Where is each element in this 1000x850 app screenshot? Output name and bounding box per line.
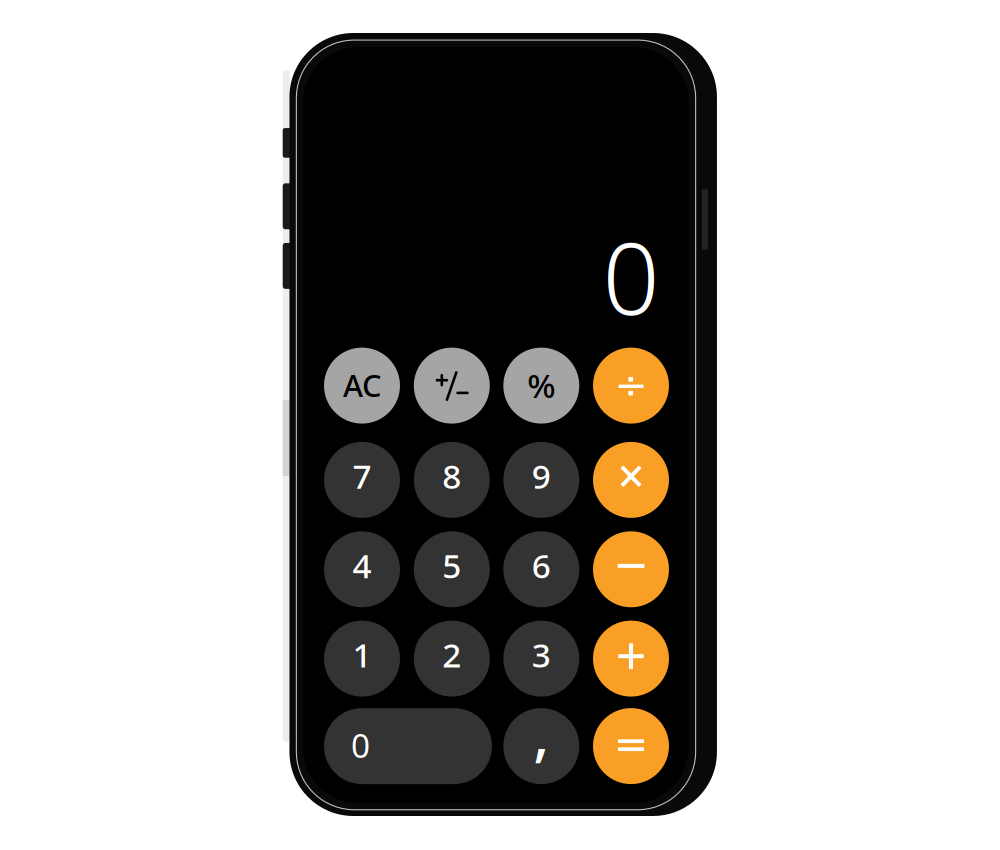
button[interactable]: ,	[503, 708, 579, 784]
button[interactable]: Add	[593, 621, 669, 697]
staticText: 0	[351, 723, 370, 767]
button[interactable]: 3	[503, 621, 579, 697]
button[interactable]: %	[503, 348, 579, 424]
button[interactable]: 8	[414, 442, 490, 518]
button[interactable]: Subtract	[593, 531, 669, 607]
button[interactable]: Plus minus	[414, 348, 490, 424]
staticText: 9	[532, 454, 551, 498]
button[interactable]: 7	[324, 442, 400, 518]
staticText: 2	[442, 632, 461, 677]
button[interactable]: Divide	[593, 348, 669, 424]
button[interactable]: 9	[503, 442, 579, 518]
button[interactable]: 6	[503, 531, 579, 607]
staticText: 4	[352, 543, 371, 587]
staticText: 0	[602, 210, 659, 342]
button[interactable]: 1	[324, 621, 400, 697]
button[interactable]: Equals	[593, 708, 669, 784]
button[interactable]: 2	[414, 621, 490, 697]
staticText: ,	[533, 694, 549, 771]
button[interactable]: 5	[414, 531, 490, 607]
staticText: 1	[352, 632, 371, 677]
staticText: 7	[352, 454, 371, 498]
staticText: %	[527, 363, 555, 407]
button[interactable]: Multiply	[593, 442, 669, 518]
staticText: 6	[532, 543, 551, 587]
button[interactable]: 4	[324, 531, 400, 607]
button[interactable]: 0	[324, 708, 492, 784]
staticText: 8	[442, 454, 461, 498]
staticText: AC	[343, 365, 381, 405]
staticText: 3	[532, 632, 551, 677]
button[interactable]: AC	[324, 348, 400, 424]
staticText: 5	[442, 543, 461, 587]
